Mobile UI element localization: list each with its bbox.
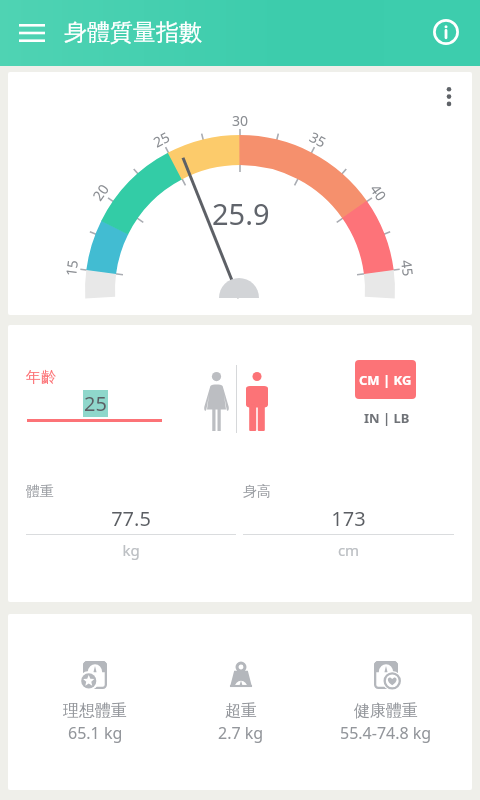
button[interactable]: CM | KG	[355, 360, 416, 399]
button[interactable]: 77.5	[26, 505, 236, 532]
staticText: 20	[88, 179, 113, 204]
staticText: 55.4-74.8 kg	[340, 722, 432, 744]
button[interactable]: 理想體重	[22, 661, 168, 744]
staticText: cm	[243, 540, 454, 560]
button[interactable]: Female	[192, 359, 240, 439]
staticText: 理想體重	[63, 701, 127, 721]
staticText: 身高	[243, 483, 271, 501]
button[interactable]: Male	[233, 359, 281, 439]
button[interactable]: More options	[429, 75, 469, 119]
button[interactable]: 健康體重	[313, 661, 458, 744]
staticText: 身體質量指數	[64, 18, 202, 47]
button[interactable]: Information	[422, 8, 470, 56]
staticText: 25	[84, 390, 107, 417]
staticText: 2.7 kg	[218, 722, 264, 744]
staticText: 體重	[26, 483, 54, 501]
staticText: 健康體重	[354, 701, 418, 721]
staticText: 35	[306, 127, 330, 152]
staticText: IN | LB	[364, 409, 410, 427]
staticText: 45	[397, 259, 418, 278]
staticText: 25.9	[212, 194, 270, 233]
staticText: kg	[26, 540, 236, 560]
button[interactable]: 173	[243, 505, 454, 532]
staticText: 30	[232, 111, 249, 130]
staticText: 年齡	[26, 368, 56, 387]
button[interactable]: 25	[28, 387, 162, 419]
staticText: 65.1 kg	[68, 722, 123, 744]
staticText: 15	[61, 258, 82, 277]
button[interactable]: Open navigation menu	[8, 9, 56, 57]
staticText: 25	[150, 127, 174, 152]
staticText: CM | KG	[359, 371, 412, 389]
button[interactable]: 超重	[168, 661, 313, 744]
button[interactable]: IN | LB	[350, 405, 423, 431]
staticText: 40	[366, 180, 391, 205]
staticText: 超重	[225, 701, 257, 721]
